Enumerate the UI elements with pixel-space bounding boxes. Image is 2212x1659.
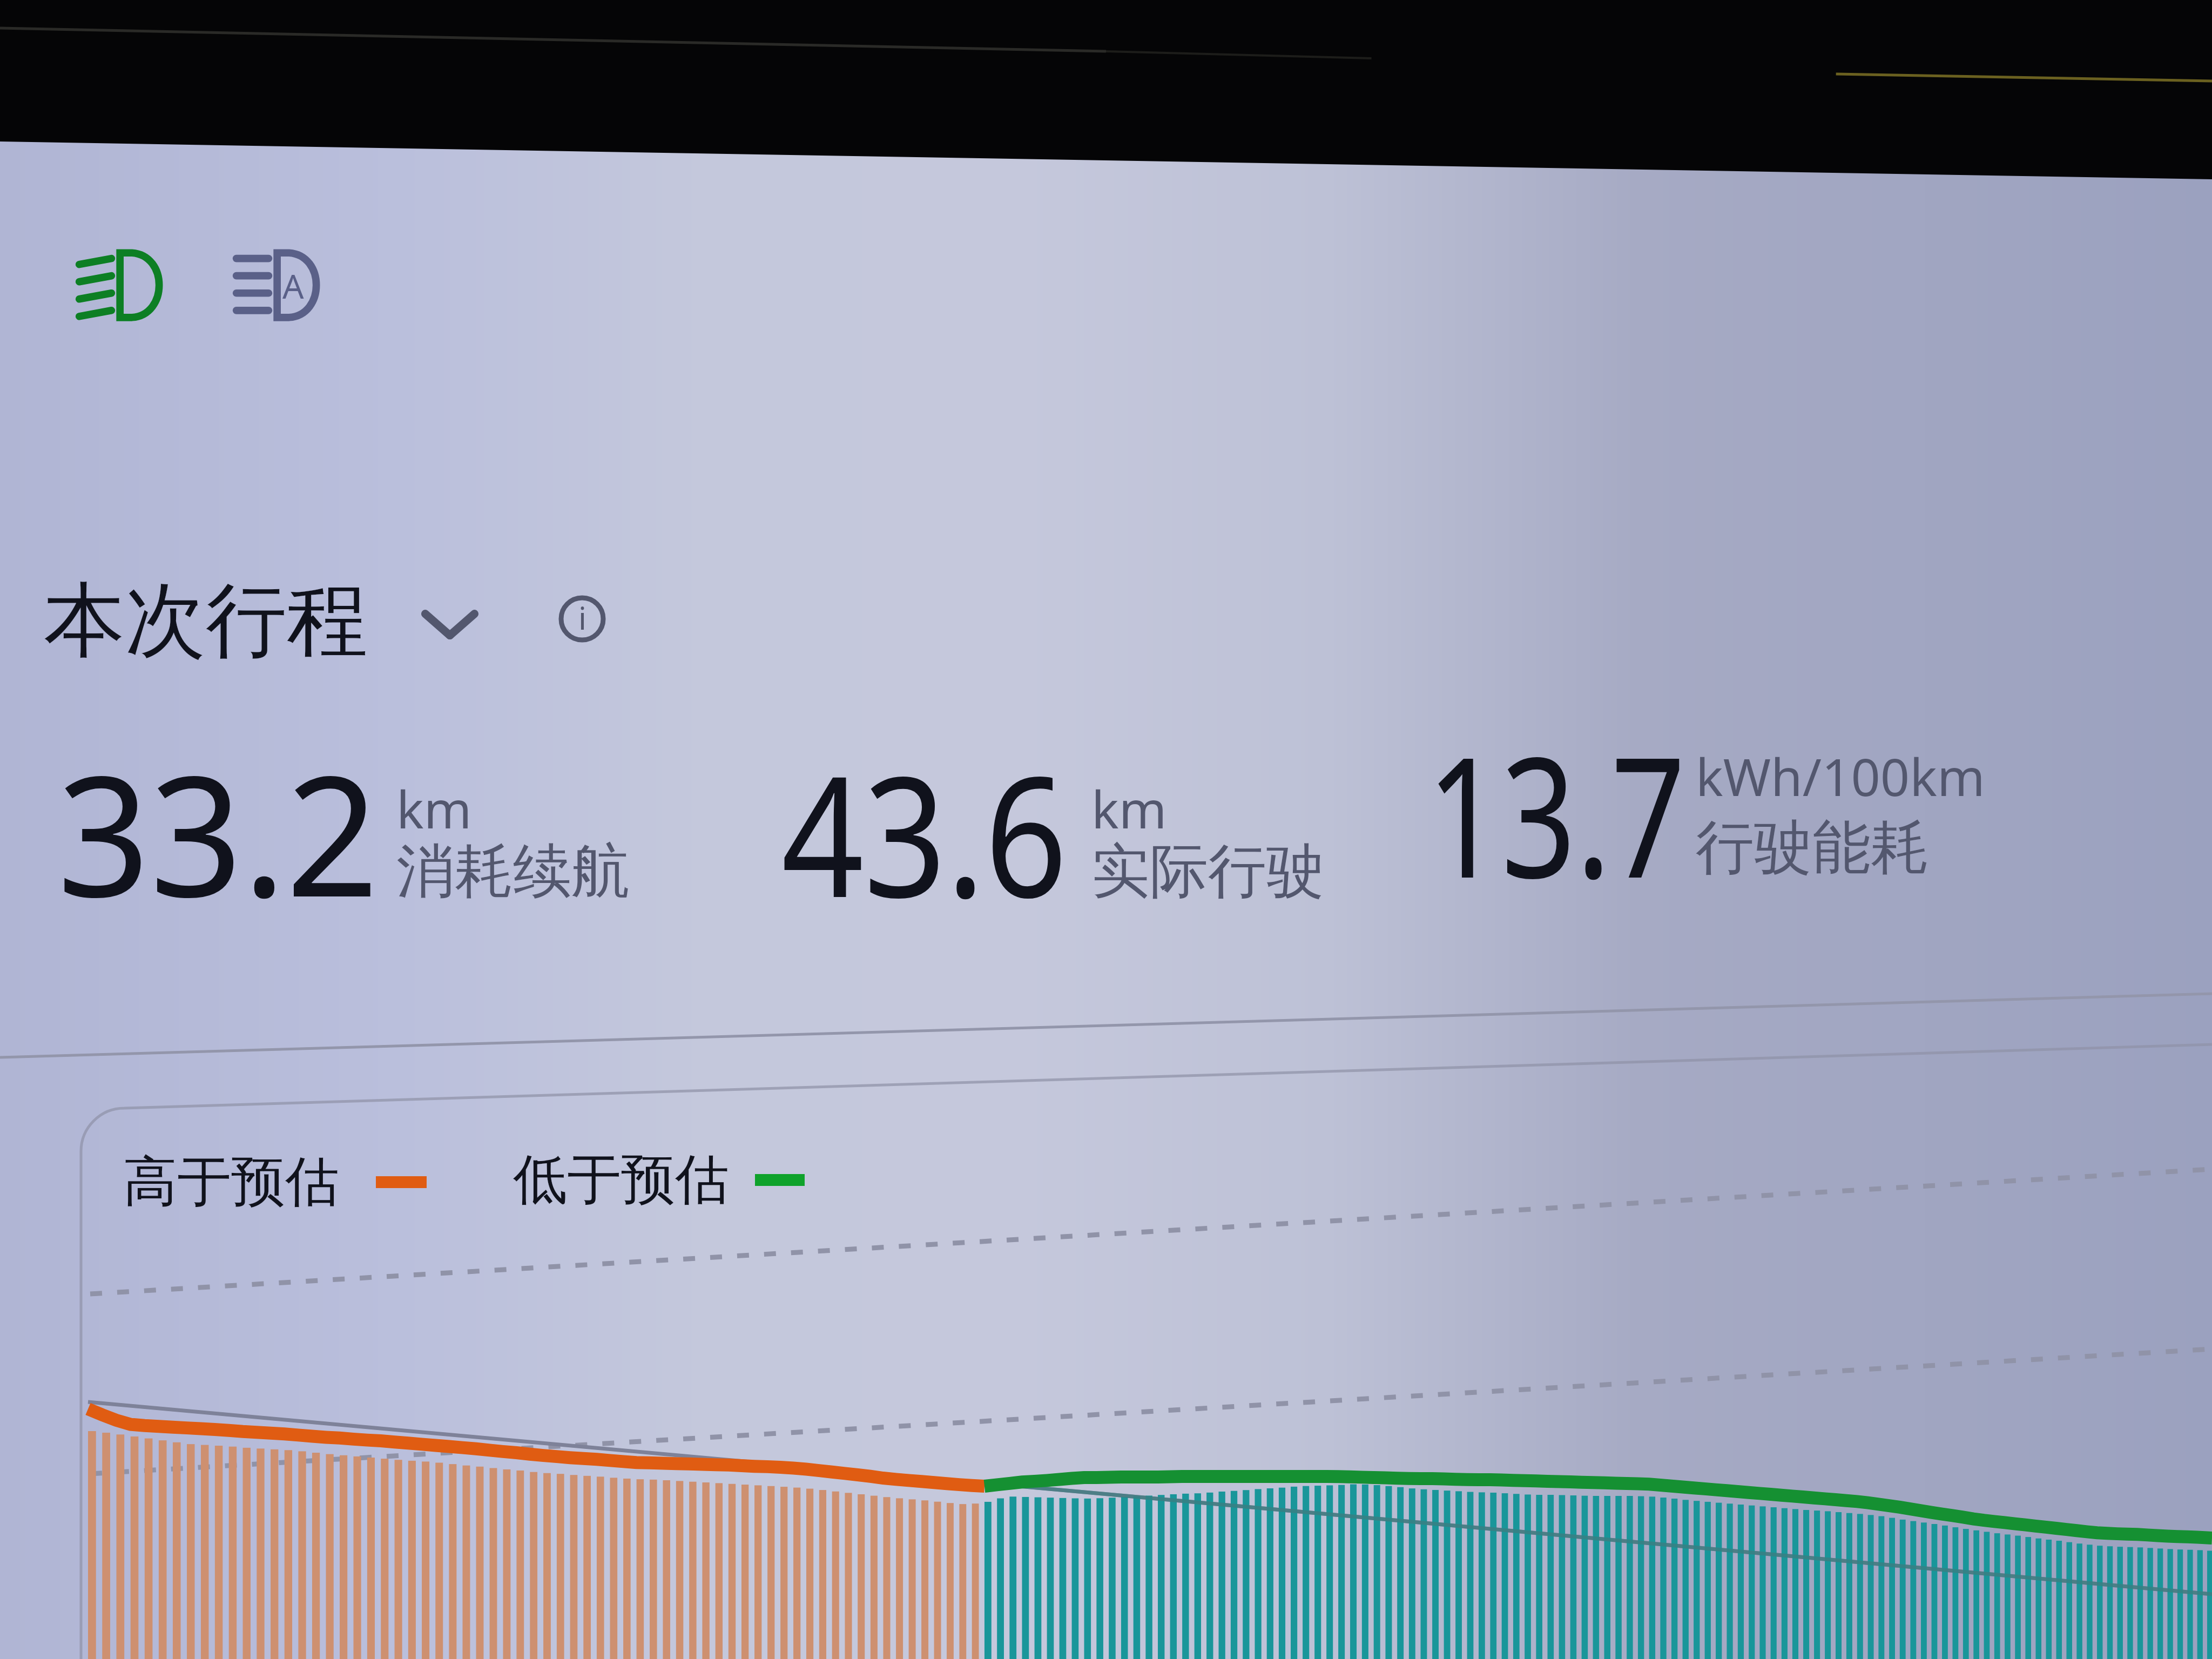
staticText: 实际行驶 bbox=[1091, 835, 1325, 908]
button[interactable]: 33.2 bbox=[57, 719, 379, 945]
staticText: km bbox=[396, 773, 472, 843]
staticText: 消耗续航 bbox=[396, 835, 630, 908]
button[interactable]: 43.6 bbox=[781, 719, 1068, 946]
button[interactable]: 13.7 bbox=[1427, 700, 1686, 926]
staticText: i bbox=[578, 596, 586, 639]
button[interactable]: Low beam headlight on bbox=[76, 250, 165, 320]
button[interactable]: 高于预估 bbox=[123, 1148, 427, 1216]
staticText: 本次行程 bbox=[44, 570, 368, 672]
staticText: 43.6 bbox=[781, 719, 1068, 946]
button[interactable]: 低于预估 bbox=[513, 1146, 805, 1214]
button[interactable]: Information bbox=[558, 595, 606, 643]
staticText: 13.7 bbox=[1427, 700, 1686, 926]
staticText: 行驶能耗 bbox=[1696, 811, 1929, 885]
staticText: 33.2 bbox=[57, 719, 379, 945]
button[interactable]: Automatic headlight bbox=[233, 250, 322, 320]
button[interactable]: 本次行程 bbox=[44, 570, 482, 672]
staticText: kWh/100km bbox=[1696, 741, 1985, 811]
staticText: A bbox=[282, 263, 304, 308]
staticText: km bbox=[1091, 773, 1167, 843]
staticText: 高于预估 bbox=[123, 1148, 339, 1216]
staticText: 低于预估 bbox=[513, 1146, 729, 1214]
